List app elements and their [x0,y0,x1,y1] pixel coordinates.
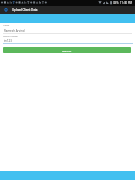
staticText: tn123 [4,39,12,43]
other: Location [4,8,8,12]
staticText: Vehicle Number [3,35,18,38]
staticText: Register [62,49,72,52]
staticText: Name [3,24,10,27]
button[interactable]: Register [3,47,131,53]
staticText: Ramesh Arvind [4,29,25,33]
staticText: Upload Client Data [12,8,38,12]
staticText: 33% 11:30 PM [113,1,133,5]
